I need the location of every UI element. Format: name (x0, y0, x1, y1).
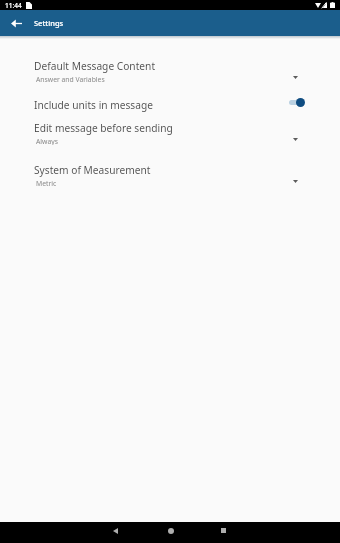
staticText: Edit message before sending (34, 121, 173, 135)
staticText: Answer and Variables (36, 75, 105, 83)
staticText: Always (36, 137, 58, 145)
button[interactable]: Edit message before sending (0, 115, 340, 139)
staticText: 11:44 (5, 1, 22, 10)
button[interactable]: Back (88, 522, 143, 543)
button[interactable]: Home (143, 522, 198, 543)
button[interactable]: Recent apps (198, 522, 253, 543)
button[interactable]: Include units in message (0, 93, 340, 115)
staticText: Metric (36, 179, 57, 187)
staticText: Default Message Content (34, 59, 156, 73)
button[interactable]: Default Message Content (0, 53, 340, 77)
button[interactable]: Navigate up (5, 10, 27, 36)
button[interactable]: System of Measurement (0, 157, 340, 181)
staticText: System of Measurement (34, 163, 151, 177)
staticText: Include units in message (34, 98, 153, 112)
staticText: Settings (34, 18, 64, 28)
